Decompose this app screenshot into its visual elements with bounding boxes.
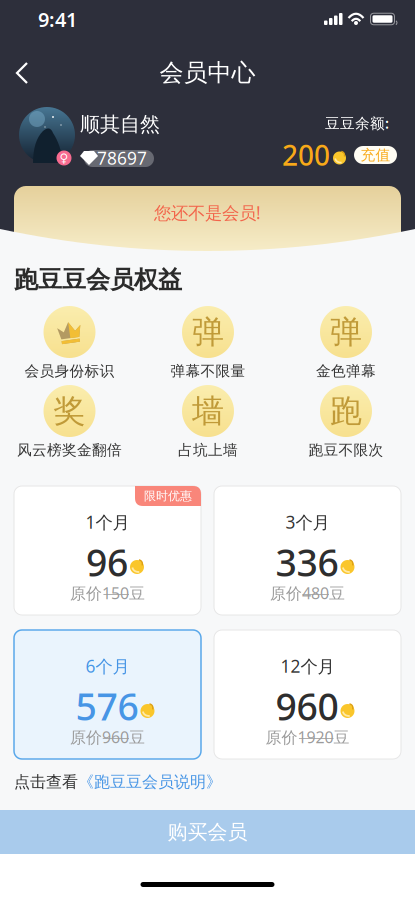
- staticText: 墙: [192, 391, 224, 431]
- staticText: 960: [275, 681, 338, 731]
- staticText: 3个月: [285, 510, 329, 533]
- staticText: 原价960豆: [70, 726, 145, 748]
- button[interactable]: 点击查看: [14, 772, 222, 792]
- staticText: 点击查看: [14, 772, 78, 792]
- staticText: ♀: [59, 151, 68, 165]
- staticText: 96: [86, 537, 128, 587]
- staticText: 跑豆豆会员权益: [14, 265, 182, 294]
- staticText: 弹: [330, 312, 362, 352]
- staticText: 12个月: [280, 654, 334, 677]
- staticText: 原价1920豆: [265, 726, 349, 748]
- button[interactable]: Back: [16, 62, 38, 84]
- staticText: 78697: [97, 146, 147, 169]
- staticText: 1个月: [85, 510, 129, 533]
- staticText: 限时优惠: [144, 489, 192, 503]
- button[interactable]: 购买会员: [0, 810, 415, 854]
- staticText: 原价480豆: [270, 582, 345, 604]
- button[interactable]: 1个月: [14, 486, 201, 615]
- button[interactable]: 12个月: [214, 630, 401, 759]
- staticText: 《跑豆豆会员说明》: [78, 772, 222, 792]
- staticText: 您还不是会员!: [154, 201, 261, 224]
- staticText: 原价150豆: [70, 582, 145, 604]
- staticText: 跑: [330, 391, 362, 431]
- button[interactable]: 充值: [354, 146, 397, 164]
- staticText: 豆豆余额:: [325, 113, 389, 133]
- button[interactable]: 3个月: [214, 486, 401, 615]
- staticText: 会员中心: [159, 58, 255, 87]
- staticText: 9:41: [38, 6, 77, 33]
- staticText: 占坑上墙: [178, 441, 238, 459]
- staticText: 576: [75, 681, 138, 731]
- staticText: 购买会员: [167, 820, 247, 844]
- staticText: 顺其自然: [80, 112, 160, 137]
- staticText: 金色弹幕: [316, 362, 376, 380]
- button[interactable]: 6个月: [14, 630, 201, 759]
- staticText: 6个月: [85, 654, 129, 677]
- staticText: 弹: [192, 312, 224, 352]
- staticText: 奖: [53, 391, 85, 431]
- staticText: 充值: [360, 146, 390, 164]
- staticText: 风云榜奖金翻倍: [17, 441, 122, 459]
- staticText: 会员身份标识: [24, 362, 114, 380]
- staticText: 336: [275, 537, 338, 587]
- staticText: 弹幕不限量: [170, 362, 245, 380]
- staticText: 跑豆不限次: [308, 441, 383, 459]
- staticText: 200: [282, 136, 330, 174]
